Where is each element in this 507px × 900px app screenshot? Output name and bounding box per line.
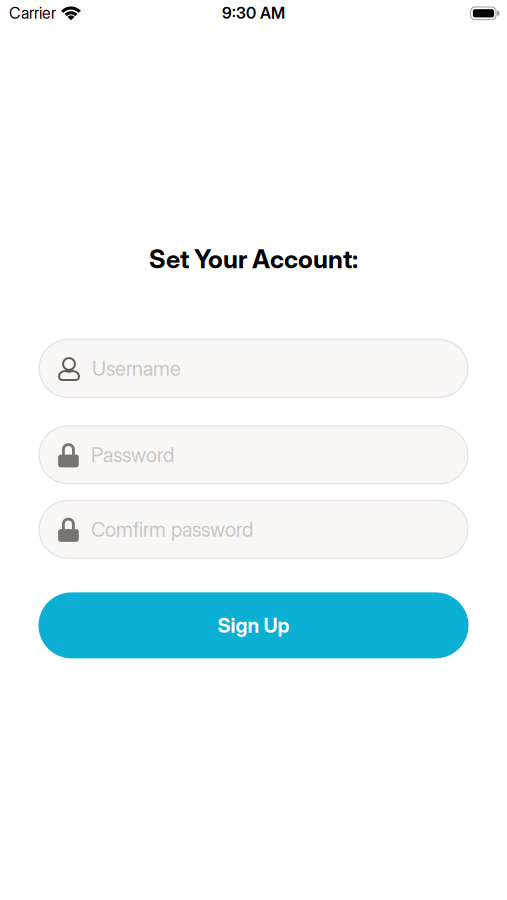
- staticText: Sign Up: [217, 614, 289, 637]
- staticText: Password: [91, 443, 174, 467]
- staticText: Set Your Account:: [149, 244, 358, 274]
- button[interactable]: Sign Up: [38, 592, 468, 658]
- button[interactable]: Comfirm password: [38, 500, 468, 559]
- button[interactable]: Username: [38, 339, 468, 398]
- staticText: Username: [92, 357, 181, 380]
- staticText: 9:30 AM: [222, 4, 285, 22]
- staticText: Comfirm password: [91, 518, 253, 541]
- staticText: Carrier: [9, 4, 56, 22]
- button[interactable]: Password: [38, 425, 468, 484]
